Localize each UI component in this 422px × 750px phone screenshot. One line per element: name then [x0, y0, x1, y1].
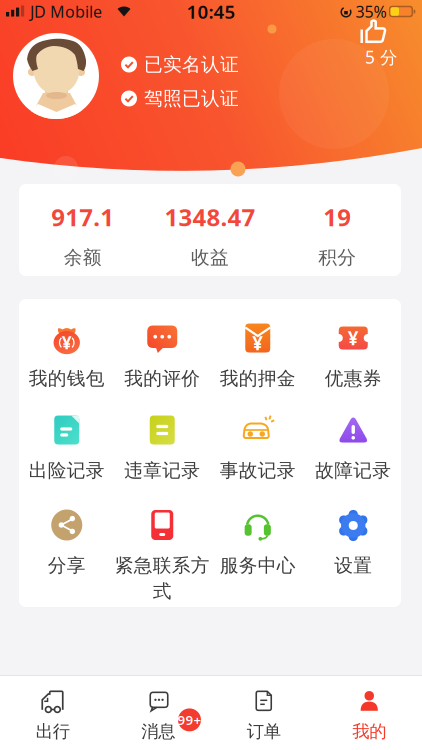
staticText: 设置 [334, 554, 372, 577]
staticText: ¥ [252, 331, 263, 355]
staticText: 优惠券 [325, 367, 382, 390]
staticText: JD Mobile [30, 1, 102, 22]
staticText: 35% [355, 1, 386, 22]
button[interactable]: 违章记录 [114, 391, 210, 483]
staticText: 紧急联系方 [115, 554, 210, 577]
staticText: 消息 [141, 721, 175, 742]
button[interactable]: 出险记录 [19, 391, 114, 483]
button[interactable]: ¥ [210, 299, 305, 391]
button[interactable]: 订单 [211, 676, 316, 750]
button[interactable]: 19 [274, 191, 401, 269]
button[interactable]: 故障记录 [305, 391, 401, 483]
staticText: 出险记录 [29, 459, 105, 482]
staticText: 分享 [48, 554, 86, 577]
button[interactable]: 分享 [19, 483, 114, 607]
button[interactable]: 头像 [13, 33, 99, 119]
button[interactable]: 1348.47 [146, 191, 274, 269]
staticText: 余额 [64, 246, 102, 269]
staticText: 事故记录 [220, 459, 296, 482]
staticText: 积分 [318, 246, 356, 269]
staticText: 我的 [352, 721, 386, 742]
staticText: 订单 [247, 721, 281, 742]
button[interactable]: 驾照已认证 [121, 87, 239, 110]
staticText: 917.1 [51, 201, 114, 233]
staticText: 5 分 [365, 45, 397, 68]
staticText: 10:45 [186, 0, 235, 24]
staticText: 服务中心 [220, 554, 296, 577]
button[interactable]: ¥ [305, 299, 401, 391]
staticText: 我的钱包 [29, 367, 105, 390]
button[interactable]: 好评分 [352, 15, 402, 67]
button[interactable]: 紧急联系方 [114, 483, 210, 607]
button[interactable]: 917.1 [19, 191, 146, 269]
staticText: 19 [323, 201, 351, 233]
button[interactable]: 服务中心 [210, 483, 305, 607]
button[interactable]: 事故记录 [210, 391, 305, 483]
button[interactable]: 出行 [0, 676, 105, 750]
button[interactable]: 我的 [316, 676, 422, 750]
button[interactable]: 我的评价 [114, 299, 210, 391]
button[interactable]: ¥ [19, 299, 114, 391]
staticText: ¥ [348, 326, 359, 350]
staticText: 式 [153, 580, 172, 603]
staticText: ¥ [62, 331, 72, 354]
button[interactable]: 消息 [105, 676, 211, 750]
staticText: 违章记录 [124, 459, 200, 482]
staticText: 99+ [177, 711, 201, 729]
staticText: 已实名认证 [144, 53, 239, 76]
staticText: 收益 [191, 246, 229, 269]
staticText: 驾照已认证 [144, 87, 239, 110]
staticText: 故障记录 [315, 459, 391, 482]
staticText: 我的评价 [124, 367, 200, 390]
button[interactable]: 设置 [305, 483, 401, 607]
button[interactable]: 已实名认证 [121, 53, 239, 76]
staticText: 1348.47 [164, 201, 255, 233]
staticText: 出行 [36, 721, 70, 742]
staticText: 我的押金 [220, 367, 296, 390]
